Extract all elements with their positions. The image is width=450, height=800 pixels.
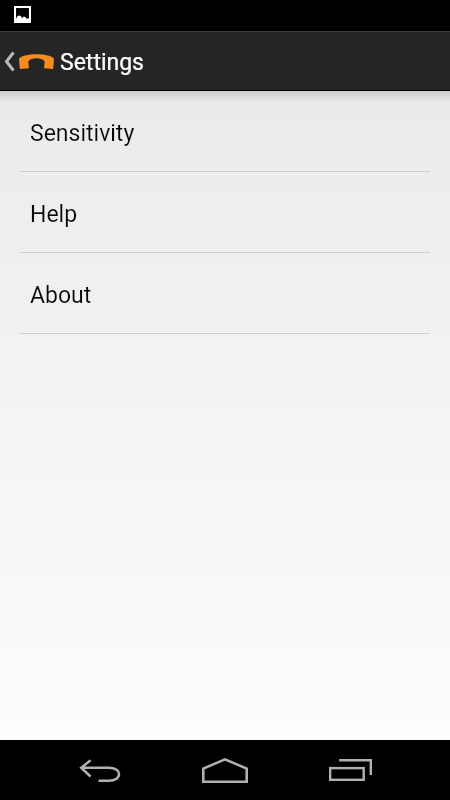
- button[interactable]: Sensitivity: [0, 91, 450, 171]
- button[interactable]: Navigate up: [0, 31, 450, 91]
- button[interactable]: Help: [0, 172, 450, 252]
- button[interactable]: About: [0, 253, 450, 333]
- button[interactable]: Back: [47, 740, 155, 800]
- staticText: About: [30, 282, 92, 309]
- staticText: Help: [30, 201, 78, 228]
- staticText: Sensitivity: [30, 120, 135, 147]
- button[interactable]: Recent apps: [296, 740, 404, 800]
- staticText: Settings: [60, 49, 144, 76]
- button[interactable]: Home: [171, 740, 279, 800]
